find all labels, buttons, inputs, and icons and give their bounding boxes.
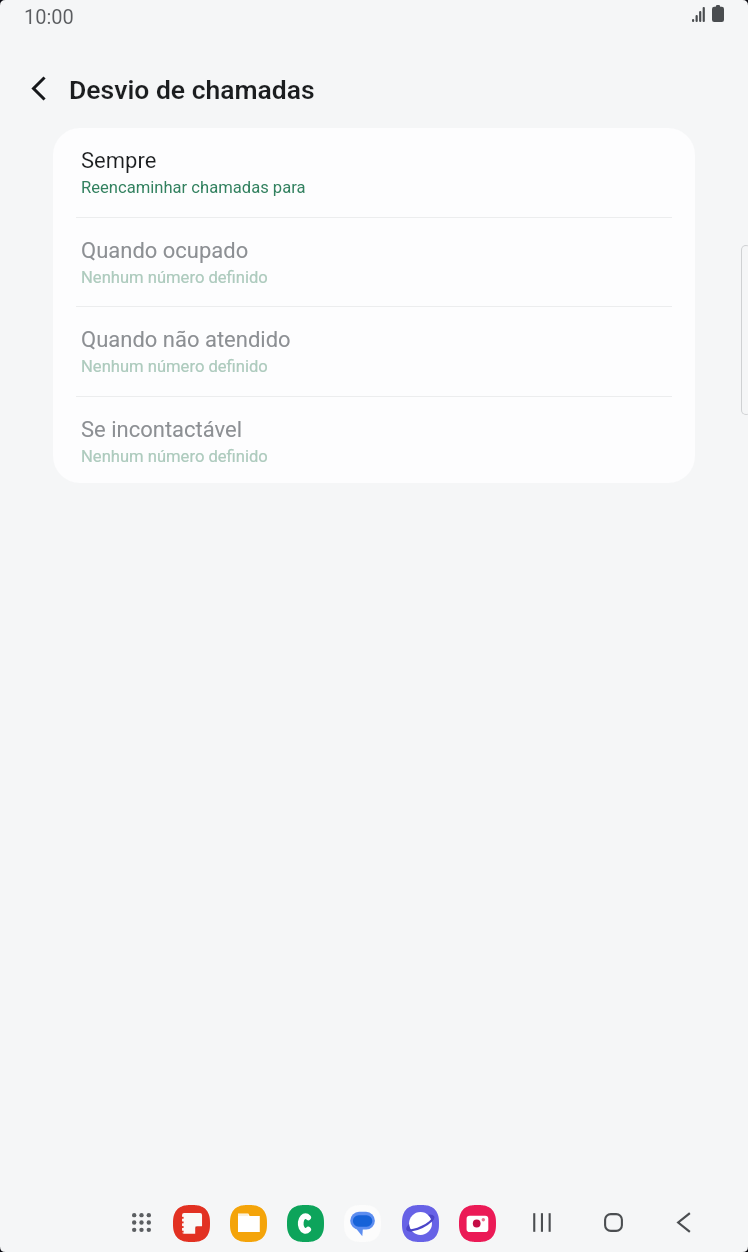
button[interactable]: Phone xyxy=(282,1200,328,1246)
button[interactable]: Messages xyxy=(339,1200,385,1246)
staticText: Quando não atendido xyxy=(81,327,291,353)
button[interactable]: Back xyxy=(659,1198,707,1246)
staticText: Sempre xyxy=(81,148,157,174)
staticText: Nenhum número definido xyxy=(81,447,268,466)
button[interactable]: Sempre xyxy=(53,128,695,217)
staticText: Reencaminhar chamadas para xyxy=(81,178,306,197)
staticText: Desvio de chamadas xyxy=(69,74,315,105)
staticText: Se incontactável xyxy=(81,417,243,443)
button[interactable]: Se incontactável xyxy=(53,397,695,483)
button[interactable]: Quando ocupado xyxy=(53,218,695,306)
button[interactable]: Camera xyxy=(454,1200,500,1246)
staticText: Quando ocupado xyxy=(81,238,249,264)
button[interactable]: Back xyxy=(14,65,62,113)
button[interactable]: Recent apps xyxy=(519,1198,567,1246)
button[interactable]: Samsung Notes xyxy=(168,1200,214,1246)
button[interactable]: Internet xyxy=(397,1200,443,1246)
staticText: 10:00 xyxy=(24,5,74,28)
staticText: Nenhum número definido xyxy=(81,357,268,376)
button[interactable]: Home xyxy=(589,1198,637,1246)
button[interactable]: Quando não atendido xyxy=(53,307,695,396)
button[interactable]: Apps xyxy=(119,1200,163,1244)
staticText: Nenhum número definido xyxy=(81,268,268,287)
button[interactable]: My Files xyxy=(225,1200,271,1246)
